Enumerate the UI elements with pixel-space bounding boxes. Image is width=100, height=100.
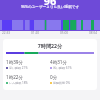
button[interactable]: 4時31分 xyxy=(50,59,97,70)
staticText: レム睡眠 18% xyxy=(9,81,28,85)
staticText: 0分 xyxy=(50,74,58,80)
staticText: 浅い睡眠 61% xyxy=(53,66,72,70)
staticText: 1時39分 xyxy=(6,59,24,65)
staticText: 01:20 xyxy=(31,31,40,35)
button[interactable]: 1時22分 xyxy=(6,74,50,85)
button[interactable]: 0分 xyxy=(50,74,97,85)
staticText: 4時31分 xyxy=(50,59,68,65)
staticText: 22:33 xyxy=(2,31,11,35)
staticText: 96 xyxy=(0,0,100,8)
staticText: 08:54 xyxy=(89,31,98,35)
staticText: 7時間22分 xyxy=(3,42,97,49)
staticText: 覚醒状態 0% xyxy=(53,81,70,85)
staticText: 05:00 xyxy=(60,31,69,35)
staticText: 1時22分 xyxy=(6,74,24,80)
staticText: 96%のユーザーよりも良い睡眠です xyxy=(0,4,100,9)
staticText: 深い睡眠 21% xyxy=(9,66,28,70)
button[interactable]: 1時39分 xyxy=(6,59,50,70)
